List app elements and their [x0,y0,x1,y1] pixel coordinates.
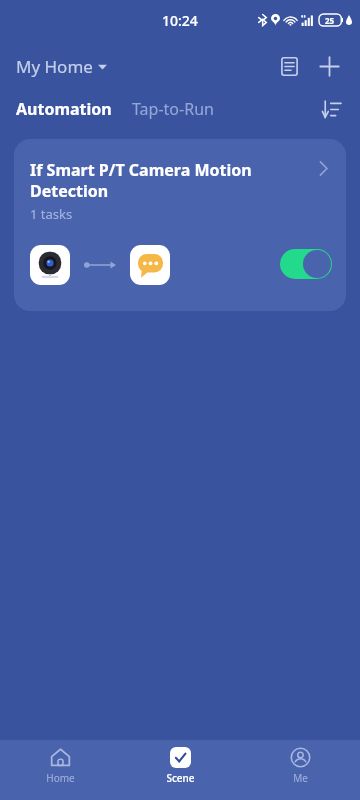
button[interactable]: My Home [14,51,109,82]
button[interactable]: Open automation [308,153,338,183]
staticText: Scene [166,771,195,785]
button[interactable]: Home [0,742,120,790]
button[interactable]: Enabled [280,249,332,279]
staticText: Automation [16,98,112,120]
button[interactable]: If Smart P/T Camera Motion Detection [14,139,346,311]
button[interactable]: Add [312,49,346,83]
staticText: My Home [16,55,93,78]
button[interactable]: Automation [0,92,122,126]
staticText: 10:24 [162,11,198,30]
staticText: Tap-to-Run [132,98,214,120]
button[interactable]: Scene [120,742,240,790]
staticText: Home [46,771,75,785]
button[interactable]: Sort [314,92,348,126]
staticText: If Smart P/T Camera Motion Detection [30,159,304,202]
button[interactable]: Device list [272,49,306,83]
staticText: 25 [325,15,335,26]
button[interactable]: Me [240,742,360,790]
staticText: 1 tasks [30,205,73,223]
button[interactable]: Tap-to-Run [122,92,224,126]
staticText: Me [293,771,308,785]
